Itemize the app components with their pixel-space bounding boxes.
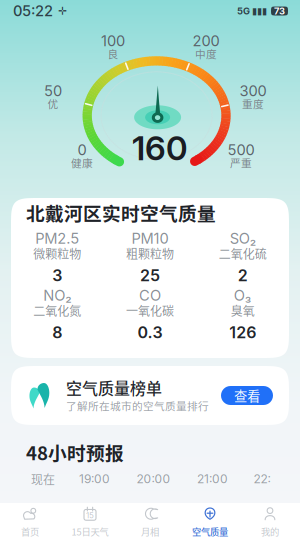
- staticText: 2: [238, 266, 248, 285]
- staticText: 73: [274, 5, 285, 17]
- staticText: CO: [139, 287, 161, 304]
- button[interactable]: 月相: [120, 503, 180, 542]
- button[interactable]: 15: [60, 503, 120, 542]
- staticText: 19:00: [79, 472, 110, 486]
- button[interactable]: 空气质量: [180, 503, 240, 542]
- staticText: NO₂: [43, 287, 71, 304]
- staticText: 8: [52, 323, 62, 342]
- staticText: 160: [132, 128, 188, 168]
- staticText: 严重: [230, 155, 252, 170]
- staticText: 健康: [71, 155, 93, 170]
- staticText: PM10: [131, 230, 168, 247]
- staticText: 5G: [237, 5, 250, 17]
- staticText: 我的: [261, 525, 279, 538]
- staticText: 100: [101, 32, 125, 50]
- staticText: 首页: [21, 525, 39, 538]
- staticText: 15: [86, 510, 94, 520]
- staticText: 126: [229, 323, 256, 342]
- staticText: 300: [239, 82, 266, 100]
- staticText: PM2.5: [35, 230, 79, 247]
- staticText: 一氧化碳: [126, 302, 174, 319]
- staticText: 25: [140, 266, 160, 285]
- staticText: 21:00: [197, 472, 228, 486]
- staticText: 北戴河区实时空气质量: [26, 199, 216, 226]
- staticText: 3: [52, 266, 62, 285]
- staticText: 中度: [195, 46, 217, 61]
- button[interactable]: 空气质量榜单: [11, 366, 289, 425]
- staticText: 50: [44, 82, 62, 100]
- staticText: 二氧化硫: [219, 245, 267, 262]
- staticText: 臭氧: [231, 302, 255, 319]
- staticText: 48小时预报: [26, 438, 124, 465]
- staticText: 15日天气: [71, 525, 108, 538]
- staticText: SO₂: [230, 230, 256, 247]
- staticText: 月相: [141, 525, 159, 538]
- staticText: ▮▮▮: [252, 6, 267, 16]
- staticText: ✛: [58, 5, 67, 17]
- staticText: 500: [227, 141, 254, 159]
- staticText: 查看: [234, 386, 260, 405]
- staticText: 重度: [242, 96, 264, 111]
- button[interactable]: 我的: [240, 503, 300, 542]
- staticText: 了解所在城市的空气质量排行: [66, 398, 209, 413]
- staticText: 微颗粒物: [33, 245, 81, 262]
- staticText: 良: [107, 46, 118, 61]
- staticText: 200: [192, 32, 219, 50]
- staticText: 空气质量榜单: [66, 376, 162, 399]
- button[interactable]: 首页: [0, 503, 60, 542]
- staticText: 22:: [253, 472, 270, 486]
- staticText: 现在: [31, 470, 55, 488]
- staticText: 20:00: [136, 472, 170, 486]
- staticText: 粗颗粒物: [126, 245, 174, 262]
- staticText: 0: [77, 141, 86, 159]
- staticText: 空气质量: [192, 525, 228, 538]
- staticText: O₃: [234, 287, 252, 304]
- staticText: 优: [47, 96, 58, 111]
- staticText: 0.3: [137, 323, 162, 342]
- staticText: 05:22: [13, 2, 53, 20]
- staticText: 二氧化氮: [33, 302, 81, 319]
